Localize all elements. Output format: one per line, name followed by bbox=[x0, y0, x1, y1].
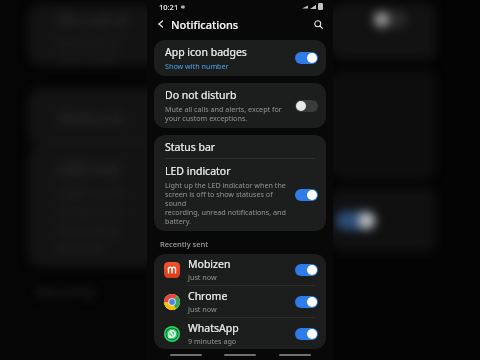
staticText: Recently sent bbox=[160, 239, 209, 249]
staticText: Just now bbox=[188, 304, 217, 314]
button[interactable]: On bbox=[295, 189, 318, 201]
button[interactable]: Chrome bbox=[154, 286, 326, 317]
button[interactable]: Search bbox=[309, 15, 327, 33]
staticText: Do not disturb bbox=[165, 88, 237, 102]
staticText: Mute all calls and alerts, except for yo… bbox=[165, 104, 282, 123]
staticText: Show with number bbox=[165, 61, 229, 71]
button[interactable]: Mobizen bbox=[154, 254, 326, 285]
staticText: 9 minutes ago bbox=[188, 336, 237, 346]
button[interactable]: WhatsApp bbox=[154, 318, 326, 349]
staticText: Just now bbox=[188, 272, 217, 282]
button[interactable]: Do not disturb bbox=[154, 83, 326, 128]
button[interactable]: On bbox=[295, 52, 318, 64]
staticText: Mobizen bbox=[188, 257, 231, 271]
staticText: Notifications bbox=[171, 17, 239, 32]
staticText: Light up the LED indicator when the scre… bbox=[165, 180, 289, 226]
button[interactable]: App icon badges bbox=[154, 40, 326, 76]
staticText: 10:21 bbox=[159, 2, 179, 12]
button[interactable]: On bbox=[295, 296, 318, 308]
staticText: LED indicator bbox=[165, 164, 231, 178]
button[interactable]: Off bbox=[295, 100, 318, 112]
button[interactable]: On bbox=[295, 264, 318, 276]
button[interactable]: Navigation bbox=[279, 354, 311, 356]
button[interactable]: Back bbox=[152, 15, 170, 33]
staticText: WhatsApp bbox=[188, 321, 239, 335]
button[interactable]: Navigation bbox=[224, 354, 256, 356]
button[interactable]: On bbox=[295, 328, 318, 340]
staticText: Status bar bbox=[165, 140, 216, 154]
staticText: App icon badges bbox=[165, 45, 247, 59]
staticText: Chrome bbox=[188, 289, 228, 303]
button[interactable]: LED indicator bbox=[154, 159, 326, 231]
button[interactable]: Status bar bbox=[154, 135, 326, 158]
button[interactable]: Navigation bbox=[170, 354, 202, 356]
